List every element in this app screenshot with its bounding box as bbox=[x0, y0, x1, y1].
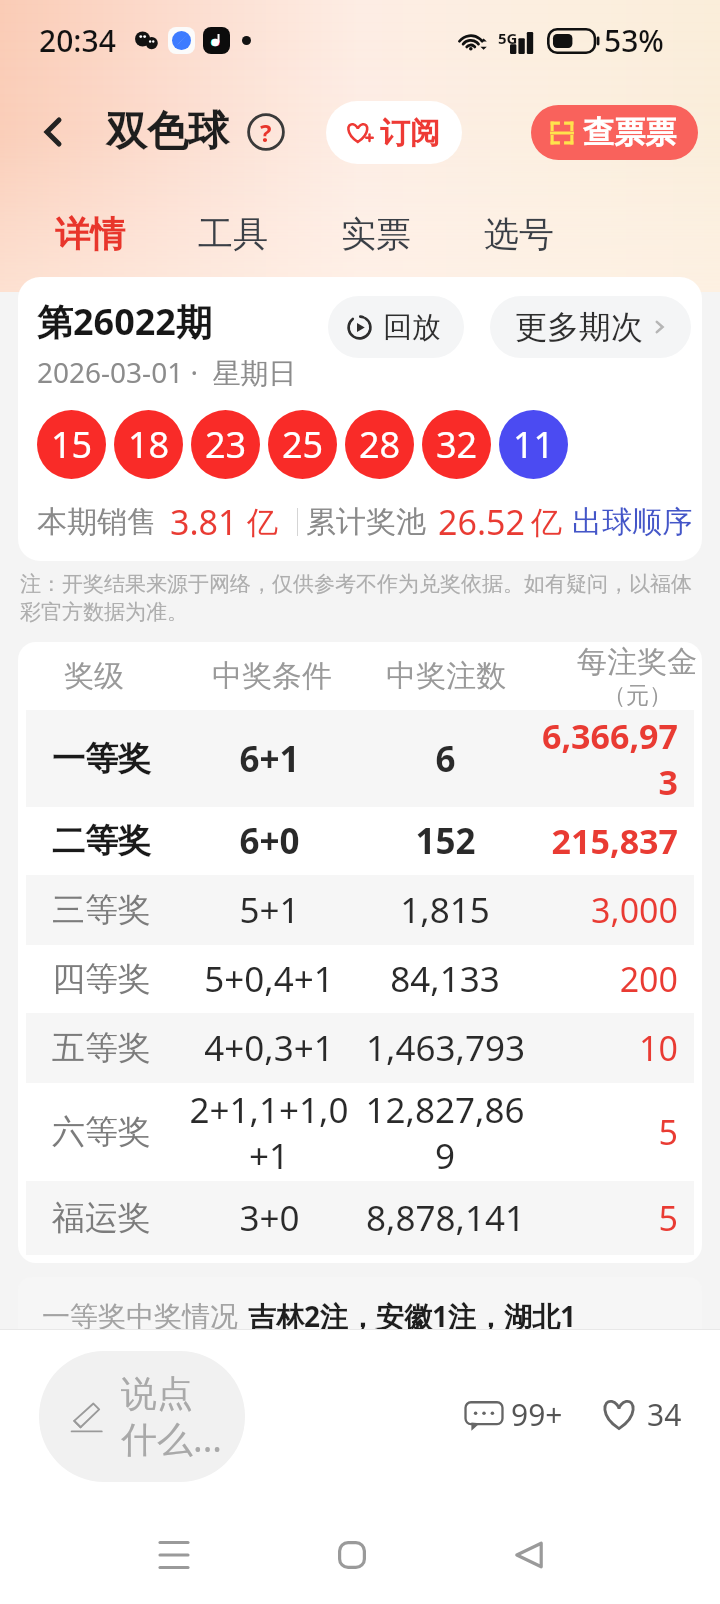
button[interactable]: 回放 bbox=[328, 296, 464, 358]
button[interactable]: Back bbox=[28, 107, 78, 157]
button[interactable]: 99+ bbox=[463, 1393, 563, 1435]
staticText: 奖级 bbox=[64, 657, 124, 695]
button[interactable]: 详情 bbox=[55, 212, 125, 256]
staticText: 32 bbox=[436, 420, 478, 469]
staticText: 5 bbox=[531, 1195, 678, 1241]
staticText: 6+0 bbox=[239, 817, 300, 865]
button[interactable]: 订阅 bbox=[326, 101, 462, 164]
staticText: 99+ bbox=[511, 1394, 563, 1435]
staticText: 28 bbox=[359, 420, 401, 469]
staticText: 18 bbox=[128, 420, 170, 469]
staticText: 12,827,869 bbox=[360, 1086, 530, 1179]
staticText: 第26022期 bbox=[37, 297, 212, 346]
button[interactable]: Help bbox=[245, 111, 287, 153]
button[interactable]: 查票票 bbox=[531, 105, 698, 160]
staticText: 6 bbox=[435, 735, 456, 783]
staticText: 215,837 bbox=[531, 818, 678, 864]
staticText: 实票 bbox=[341, 212, 411, 256]
button[interactable]: 说点 什么... bbox=[39, 1351, 245, 1482]
staticText: 2026-03-01 · 星期日 bbox=[37, 353, 297, 391]
staticText: 五等奖 bbox=[52, 1027, 151, 1069]
staticText: 34 bbox=[647, 1394, 682, 1435]
staticText: 六等奖 bbox=[52, 1111, 151, 1153]
staticText: 一等奖 bbox=[52, 738, 151, 780]
staticText: 回放 bbox=[383, 309, 441, 346]
button[interactable]: Home bbox=[317, 1520, 386, 1589]
staticText: 三等奖 bbox=[52, 889, 151, 931]
staticText: 84,133 bbox=[390, 955, 500, 1003]
staticText: 注：开奖结果来源于网络，仅供参考不作为兑奖依据。如有疑问，以福体彩官方数据为准。 bbox=[20, 571, 702, 625]
staticText: 25 bbox=[282, 420, 324, 469]
button[interactable]: 选号 bbox=[484, 212, 554, 256]
staticText: 3+0 bbox=[239, 1194, 300, 1242]
staticText: 23 bbox=[205, 420, 247, 469]
staticText: 4+0,3+1 bbox=[204, 1024, 334, 1072]
staticText: 吉林2注，安徽1注，湖北1 bbox=[248, 1297, 577, 1335]
staticText: 11 bbox=[513, 420, 555, 469]
staticText: 更多期次 bbox=[515, 307, 643, 347]
staticText: 15 bbox=[51, 420, 93, 469]
button[interactable]: 34 bbox=[599, 1394, 682, 1435]
staticText: 200 bbox=[531, 956, 678, 1002]
staticText: 说点 什么... bbox=[121, 1371, 222, 1462]
button[interactable]: Back bbox=[494, 1520, 563, 1589]
staticText: 工具 bbox=[198, 212, 268, 256]
staticText: 10 bbox=[531, 1025, 678, 1071]
staticText: 5+0,4+1 bbox=[204, 955, 334, 1003]
button[interactable]: 更多期次 bbox=[490, 296, 691, 358]
staticText: 8,878,141 bbox=[366, 1194, 525, 1242]
staticText: 152 bbox=[415, 817, 476, 865]
staticText: 订阅 bbox=[380, 114, 440, 152]
staticText: 2+1,1+1,0+1 bbox=[181, 1086, 357, 1179]
staticText: 6+1 bbox=[239, 735, 300, 783]
staticText: 1,463,793 bbox=[366, 1024, 525, 1072]
staticText: 20:34 bbox=[39, 20, 116, 61]
staticText: 累计奖池 bbox=[306, 503, 426, 541]
staticText: 四等奖 bbox=[52, 958, 151, 1000]
button[interactable]: Recent apps bbox=[139, 1520, 208, 1589]
staticText: 1,815 bbox=[400, 886, 490, 934]
staticText: 二等奖 bbox=[52, 820, 151, 862]
staticText: ? bbox=[260, 116, 272, 149]
staticText: 6,366,973 bbox=[531, 713, 678, 805]
button[interactable]: 出球顺序 bbox=[572, 503, 692, 541]
staticText: 福运奖 bbox=[52, 1197, 151, 1239]
staticText: 详情 bbox=[55, 212, 125, 256]
staticText: 本期销售 bbox=[37, 503, 157, 541]
staticText: 5+1 bbox=[239, 886, 300, 934]
staticText: 每注奖金 bbox=[577, 643, 697, 681]
button[interactable]: 一等奖中奖情况 bbox=[18, 1277, 702, 1377]
staticText: 26.52 bbox=[438, 499, 525, 545]
staticText: 亿 bbox=[531, 503, 562, 542]
staticText: 中奖条件 bbox=[212, 657, 332, 695]
button[interactable]: 工具 bbox=[198, 212, 268, 256]
button[interactable]: 实票 bbox=[341, 212, 411, 256]
staticText: 双色球 bbox=[106, 106, 229, 158]
staticText: 亿 bbox=[247, 503, 278, 542]
staticText: 3.81 bbox=[170, 499, 238, 545]
staticText: 5G bbox=[498, 28, 518, 48]
staticText: （元） bbox=[603, 681, 672, 710]
staticText: 查票票 bbox=[583, 113, 676, 152]
staticText: 选号 bbox=[484, 212, 554, 256]
staticText: 5 bbox=[531, 1109, 678, 1155]
staticText: 出球顺序 bbox=[572, 503, 692, 541]
staticText: 中奖注数 bbox=[386, 657, 506, 695]
staticText: 53% bbox=[604, 20, 664, 61]
staticText: 3,000 bbox=[531, 887, 678, 933]
staticText: 一等奖中奖情况 bbox=[42, 1299, 238, 1334]
